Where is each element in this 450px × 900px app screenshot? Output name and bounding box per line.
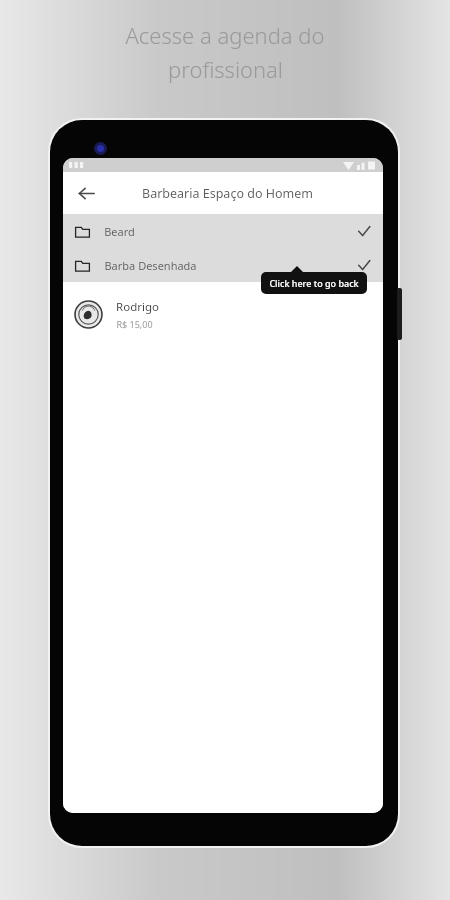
button[interactable]: Back bbox=[71, 178, 101, 208]
staticText: Beard bbox=[104, 224, 135, 239]
staticText: Barba Desenhada bbox=[104, 258, 197, 273]
button[interactable]: Beard bbox=[63, 214, 383, 248]
staticText: R$ 15,00 bbox=[116, 318, 153, 330]
other: Power button bbox=[397, 288, 402, 340]
staticText: Barbearia Espaço do Homem bbox=[142, 185, 313, 202]
staticText: profissional bbox=[168, 54, 283, 84]
button[interactable]: Click here to go back bbox=[261, 272, 367, 294]
staticText: Rodrigo bbox=[116, 299, 159, 315]
button[interactable]: Rodrigo bbox=[63, 290, 383, 338]
staticText: Acesse a agenda do bbox=[125, 20, 325, 50]
staticText: Click here to go back bbox=[269, 277, 359, 289]
button[interactable]: Barba Desenhada bbox=[63, 248, 383, 282]
